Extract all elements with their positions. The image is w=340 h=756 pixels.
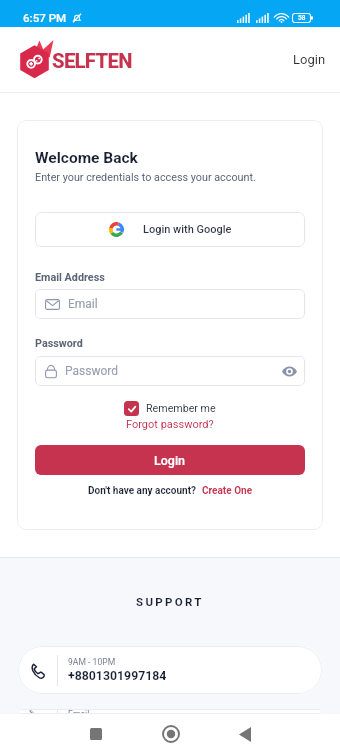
button[interactable]: Recents bbox=[75, 713, 117, 755]
staticText: Login with Google bbox=[143, 223, 232, 236]
button[interactable]: Home bbox=[150, 713, 192, 755]
staticText: Password bbox=[65, 364, 119, 378]
staticText: Login bbox=[154, 453, 186, 468]
staticText: Remember me bbox=[146, 402, 216, 415]
button[interactable]: Login bbox=[35, 445, 305, 475]
button[interactable]: Email bbox=[35, 289, 305, 319]
staticText: Email bbox=[68, 297, 98, 311]
staticText: SUPPORT bbox=[136, 595, 204, 608]
staticText: +8801301997184 bbox=[68, 669, 167, 683]
staticText: Welcome Back bbox=[35, 149, 138, 167]
staticText: 6:57 PM bbox=[23, 11, 67, 25]
staticText: Password bbox=[35, 337, 83, 350]
button[interactable]: Create One bbox=[202, 485, 253, 497]
staticText: Enter your credentials to access your ac… bbox=[35, 171, 256, 184]
button[interactable]: Password bbox=[35, 356, 305, 386]
staticText: Email bbox=[68, 709, 90, 714]
staticText: Don't have any account? bbox=[88, 485, 197, 497]
button[interactable]: Email bbox=[18, 709, 322, 714]
button[interactable]: 9AM - 10PM bbox=[18, 646, 322, 694]
button[interactable]: Show password bbox=[274, 358, 305, 385]
button[interactable]: Login bbox=[277, 38, 340, 81]
staticText: Create One bbox=[202, 485, 253, 497]
button[interactable]: Remember me bbox=[124, 401, 216, 416]
button[interactable]: Forgot password? bbox=[126, 418, 214, 431]
button[interactable]: Back bbox=[224, 713, 266, 755]
staticText: 9AM - 10PM bbox=[68, 657, 116, 667]
staticText: Email Address bbox=[35, 271, 105, 284]
button[interactable]: Login with Google bbox=[35, 212, 305, 247]
staticText: 58 bbox=[298, 14, 306, 22]
staticText: Forgot password? bbox=[126, 418, 214, 431]
staticText: SELFTEN bbox=[52, 49, 132, 73]
staticText: Login bbox=[293, 52, 326, 67]
